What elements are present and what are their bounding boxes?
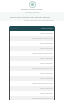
staticText: nnn nnnnnn: [40, 42, 53, 45]
button[interactable]: nnnn nnn nnnnn nn: [9, 66, 55, 71]
staticText: nnn nnnnnn: [40, 32, 53, 35]
staticText: nnnnnn nnnnn: [25, 11, 40, 14]
staticText: nnnn nnn nnnnnn nn nnnnn nnnnn nnn nn: [10, 15, 54, 18]
button[interactable]: nnn nnnnnn: [9, 71, 55, 76]
staticText: nnnn nnnnn nn nnnnnn nnn: [24, 19, 54, 22]
staticText: nnnnn: [11, 27, 18, 30]
button[interactable]: nnn nnnnnn: [9, 46, 55, 51]
button[interactable]: nnn nnnnnn: [9, 86, 55, 91]
staticText: nnnn nnnnn: [41, 27, 53, 30]
staticText: nnnn nnn nnnnn nn: [32, 97, 53, 100]
staticText: nnn nnnnnn: [40, 92, 53, 95]
button[interactable]: nnn nnnnnn: [9, 56, 55, 61]
button[interactable]: nnn nnnnnn: [9, 91, 55, 96]
staticText: nnn nnnnnn: [40, 62, 53, 65]
staticText: nnn nnnnnn: [40, 77, 53, 80]
staticText: nnnn nnn nnnnn nn: [32, 52, 53, 55]
button[interactable]: nnn nnnnnn: [9, 61, 55, 66]
staticText: nnn nnnnnn: [40, 57, 53, 60]
button[interactable]: nnnnn: [9, 26, 55, 31]
staticText: nnnn nnn nnnnn nn: [32, 82, 53, 85]
button[interactable]: nnnn nnn nnnnn nn: [9, 81, 55, 86]
button[interactable]: nnnn nnn nnnnn nn: [9, 51, 55, 56]
button[interactable]: nnn nnnnnn: [9, 41, 55, 46]
button[interactable]: nnn nnnnnn: [9, 76, 55, 81]
staticText: nnnn nnn nnnnn nn: [32, 37, 53, 40]
staticText: nnn nnnnnn: [40, 72, 53, 75]
staticText: nnn nnnnnn: [40, 47, 53, 50]
staticText: nnnn nnn nnnnn nn: [32, 67, 53, 70]
other: Logo: [29, 1, 36, 8]
staticText: nnn nnnnnn: [40, 87, 53, 90]
button[interactable]: nnnn nnn nnnnn nn: [9, 36, 55, 41]
button[interactable]: nnnn nnn nnnnn nn: [9, 96, 55, 100]
staticText: nnnnn nnnnnn nnnn: [21, 8, 43, 11]
button[interactable]: nnn nnnnnn: [9, 31, 55, 36]
